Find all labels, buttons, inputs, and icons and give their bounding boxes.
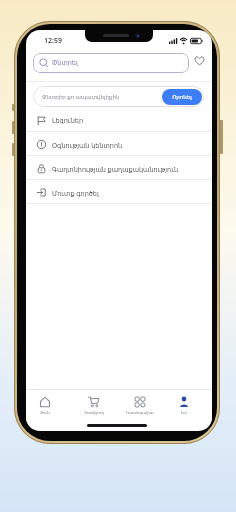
button[interactable]: Օգնության կենտրոն — [26, 132, 212, 156]
staticText: Որոնել — [172, 94, 192, 100]
button[interactable]: Որոնել — [162, 89, 202, 105]
staticText: Օգնության կենտրոն — [52, 141, 123, 150]
staticText: Գաղտնիության քաղաքականություն — [52, 165, 179, 174]
staticText: Մուտք գործել — [52, 189, 99, 198]
staticText: Տուն — [40, 410, 50, 415]
staticText: Լեզուներ — [52, 117, 84, 125]
button[interactable]: Փնտրել — [33, 53, 189, 73]
button[interactable]: Գաղտնիության քաղաքականություն — [26, 156, 212, 180]
button[interactable]: Կատեգորիա — [118, 396, 162, 415]
button[interactable]: Մուտք գործել — [26, 180, 212, 204]
staticText: Կատեգորիա — [126, 410, 154, 415]
button[interactable]: Տուն — [26, 396, 64, 415]
button[interactable]: Զամբյուղ — [74, 396, 114, 415]
staticText: Զամբյուղ — [84, 410, 104, 415]
button[interactable]: Լեզուներ — [26, 108, 212, 132]
staticText: Փնտրել — [52, 59, 78, 67]
button[interactable]: Փնտրիր քո ապատվելիքին — [33, 86, 204, 107]
button[interactable]: Ես — [166, 396, 202, 415]
staticText: Ես — [181, 410, 187, 415]
staticText: Փնտրիր քո ապատվելիքին — [42, 93, 120, 100]
button[interactable] — [194, 56, 205, 66]
staticText: 12:59 — [44, 36, 62, 46]
